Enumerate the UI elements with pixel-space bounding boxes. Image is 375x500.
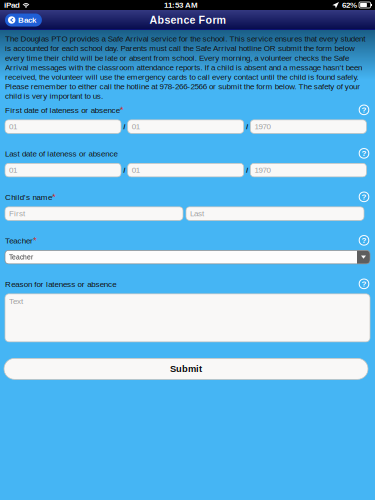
button[interactable]: Text — [5, 294, 370, 342]
staticText: Absence Form — [149, 14, 225, 26]
staticText: Child's name — [5, 193, 52, 202]
button[interactable]: 01 — [128, 120, 244, 133]
button[interactable]: Submit — [4, 358, 368, 379]
staticText: / — [246, 166, 248, 174]
staticText: First — [9, 209, 25, 218]
staticText: Back — [18, 15, 36, 24]
staticText: child is very important to us. — [5, 92, 103, 100]
staticText: 1970 — [254, 166, 270, 174]
staticText: received, the volunteer will use the eme… — [5, 72, 358, 81]
staticText: ? — [361, 149, 366, 158]
button[interactable]: Help — [358, 104, 370, 116]
staticText: / — [123, 122, 125, 131]
staticText: ? — [361, 192, 366, 201]
staticText: The Douglas PTO provides a Safe Arrival … — [5, 34, 365, 43]
button[interactable]: Help — [358, 234, 370, 246]
button[interactable]: 01 — [5, 120, 121, 133]
staticText: 01 — [132, 166, 140, 174]
staticText: First date of lateness or absence — [5, 106, 120, 115]
staticText: ? — [361, 105, 366, 114]
button[interactable]: 01 — [5, 163, 121, 177]
button[interactable]: Help — [358, 278, 370, 290]
button[interactable]: 1970 — [250, 163, 366, 177]
staticText: 62% — [342, 0, 357, 9]
button[interactable]: Last — [186, 207, 364, 220]
staticText: 01 — [132, 122, 140, 131]
staticText: 11:53 AM — [164, 0, 198, 9]
button[interactable]: 1970 — [250, 120, 366, 133]
staticText: iPad — [4, 0, 20, 9]
staticText: * — [33, 235, 37, 245]
staticText: Last date of lateness or absence — [5, 149, 118, 158]
staticText: is accounted for each school day. Parent… — [5, 44, 355, 53]
staticText: Last — [190, 209, 204, 218]
button[interactable]: Teacher — [5, 250, 370, 264]
staticText: Arrival messages with the classroom atte… — [5, 63, 362, 72]
button[interactable]: Help — [358, 191, 370, 203]
staticText: / — [123, 166, 125, 174]
staticText: ? — [361, 279, 366, 288]
staticText: ? — [361, 236, 366, 245]
staticText: Text — [9, 297, 23, 306]
button[interactable]: Back — [5, 13, 42, 26]
staticText: Teacher — [9, 253, 33, 261]
button[interactable]: 01 — [128, 163, 244, 177]
staticText: Please remember to either call the hotli… — [5, 82, 360, 91]
staticText: Reason for lateness or absence — [5, 280, 116, 289]
staticText: Teacher — [5, 236, 33, 245]
staticText: * — [52, 191, 56, 202]
staticText: * — [120, 104, 124, 115]
button[interactable]: First — [5, 207, 183, 220]
staticText: every time their child will be late or a… — [5, 53, 349, 62]
staticText: 01 — [9, 166, 17, 174]
staticText: 01 — [9, 122, 17, 131]
button[interactable]: Help — [358, 147, 370, 159]
staticText: 1970 — [254, 122, 270, 131]
staticText: Submit — [170, 364, 202, 374]
staticText: / — [246, 122, 248, 131]
